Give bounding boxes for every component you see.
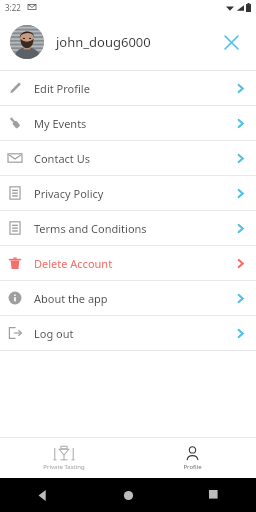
staticText: Profile xyxy=(183,463,202,471)
staticText: About the app xyxy=(34,291,108,306)
staticText: 3:22 xyxy=(5,2,21,13)
button[interactable]: Private Tasting xyxy=(0,438,128,478)
button[interactable]: Profile xyxy=(128,438,256,478)
button[interactable]: About the app xyxy=(0,281,256,315)
staticText: Edit Profile xyxy=(34,81,90,96)
staticText: Delete Account xyxy=(34,256,113,271)
button[interactable] xyxy=(10,25,44,59)
button[interactable]: Terms and Conditions xyxy=(0,211,256,245)
button[interactable]: My Events xyxy=(0,106,256,140)
staticText: Private Tasting xyxy=(43,463,85,471)
button[interactable]: Back xyxy=(0,478,86,512)
button[interactable]: Delete Account xyxy=(0,246,256,280)
staticText: Privacy Policy xyxy=(34,186,104,201)
button[interactable]: Recent apps xyxy=(171,478,256,512)
staticText: Terms and Conditions xyxy=(34,221,147,236)
button[interactable]: Privacy Policy xyxy=(0,176,256,210)
staticText: Contact Us xyxy=(34,151,90,166)
button[interactable]: Contact Us xyxy=(0,141,256,175)
button[interactable]: Close xyxy=(216,27,246,57)
button[interactable]: Edit Profile xyxy=(0,71,256,105)
button[interactable]: Log out xyxy=(0,316,256,350)
button[interactable]: Home xyxy=(86,478,171,512)
staticText: Log out xyxy=(34,326,74,341)
staticText: My Events xyxy=(34,116,87,131)
staticText: john_doug6000 xyxy=(56,33,151,51)
